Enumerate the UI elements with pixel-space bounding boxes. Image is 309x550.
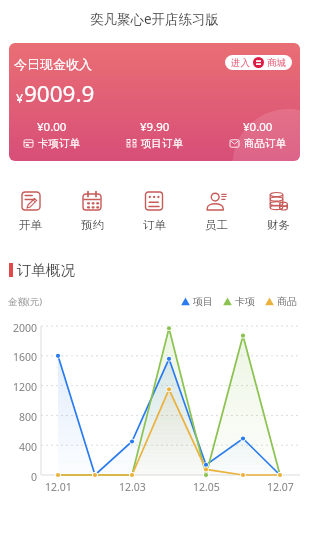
staticText: 订单概况 [17, 261, 75, 279]
staticText: 9009.9 [24, 78, 95, 109]
button[interactable]: 预约 [61, 190, 123, 232]
other: 财务 [267, 190, 289, 212]
staticText: 卡项 [235, 295, 255, 308]
staticText: 商城 [267, 57, 286, 69]
button[interactable]: ¥0.00 [206, 119, 300, 150]
staticText: 卡项订单 [38, 137, 80, 150]
button[interactable]: 财务 [247, 190, 309, 232]
staticText: 商品 [277, 295, 297, 308]
staticText: 员工 [205, 218, 228, 232]
staticText: 400 [19, 440, 38, 454]
button[interactable]: 项目 [181, 295, 213, 308]
other: 员工 [205, 190, 227, 212]
staticText: 进入 [231, 57, 250, 69]
staticText: 商品订单 [244, 137, 286, 150]
button[interactable]: 开单 [0, 190, 61, 232]
staticText: ¥9.90 [140, 119, 170, 135]
button[interactable]: 今日现金收入 [9, 43, 300, 161]
button[interactable]: 订单 [123, 190, 185, 232]
staticText: ¥ [16, 90, 24, 107]
other: 开单 [20, 190, 42, 212]
staticText: 预约 [81, 218, 104, 232]
staticText: ¥0.00 [243, 119, 273, 135]
other: 订单 [143, 190, 165, 212]
button[interactable]: 商品 [265, 295, 297, 308]
staticText: 项目订单 [141, 137, 183, 150]
staticText: ¥0.00 [37, 119, 67, 135]
staticText: 12.07 [267, 480, 294, 494]
staticText: 订单 [143, 218, 166, 232]
staticText: 1200 [13, 380, 38, 394]
staticText: 12.01 [45, 480, 72, 494]
button[interactable]: 卡项 [223, 295, 255, 308]
staticText: 奕凡聚心e开店练习版 [90, 10, 220, 28]
button[interactable]: 进入 [225, 55, 292, 70]
staticText: 1600 [13, 350, 38, 364]
button[interactable]: ¥9.90 [103, 119, 206, 150]
staticText: 12.05 [193, 480, 220, 494]
staticText: 2000 [13, 321, 38, 335]
staticText: 开单 [19, 218, 42, 232]
button[interactable]: ¥0.00 [9, 119, 103, 150]
other: 预约 [81, 190, 103, 212]
staticText: 财务 [267, 218, 290, 232]
staticText: 12.03 [119, 480, 146, 494]
staticText: 800 [19, 410, 38, 424]
staticText: 今日现金收入 [14, 56, 92, 72]
staticText: 0 [31, 470, 38, 484]
staticText: 金额(元) [8, 295, 43, 308]
staticText: 项目 [193, 295, 213, 308]
button[interactable]: 员工 [185, 190, 247, 232]
